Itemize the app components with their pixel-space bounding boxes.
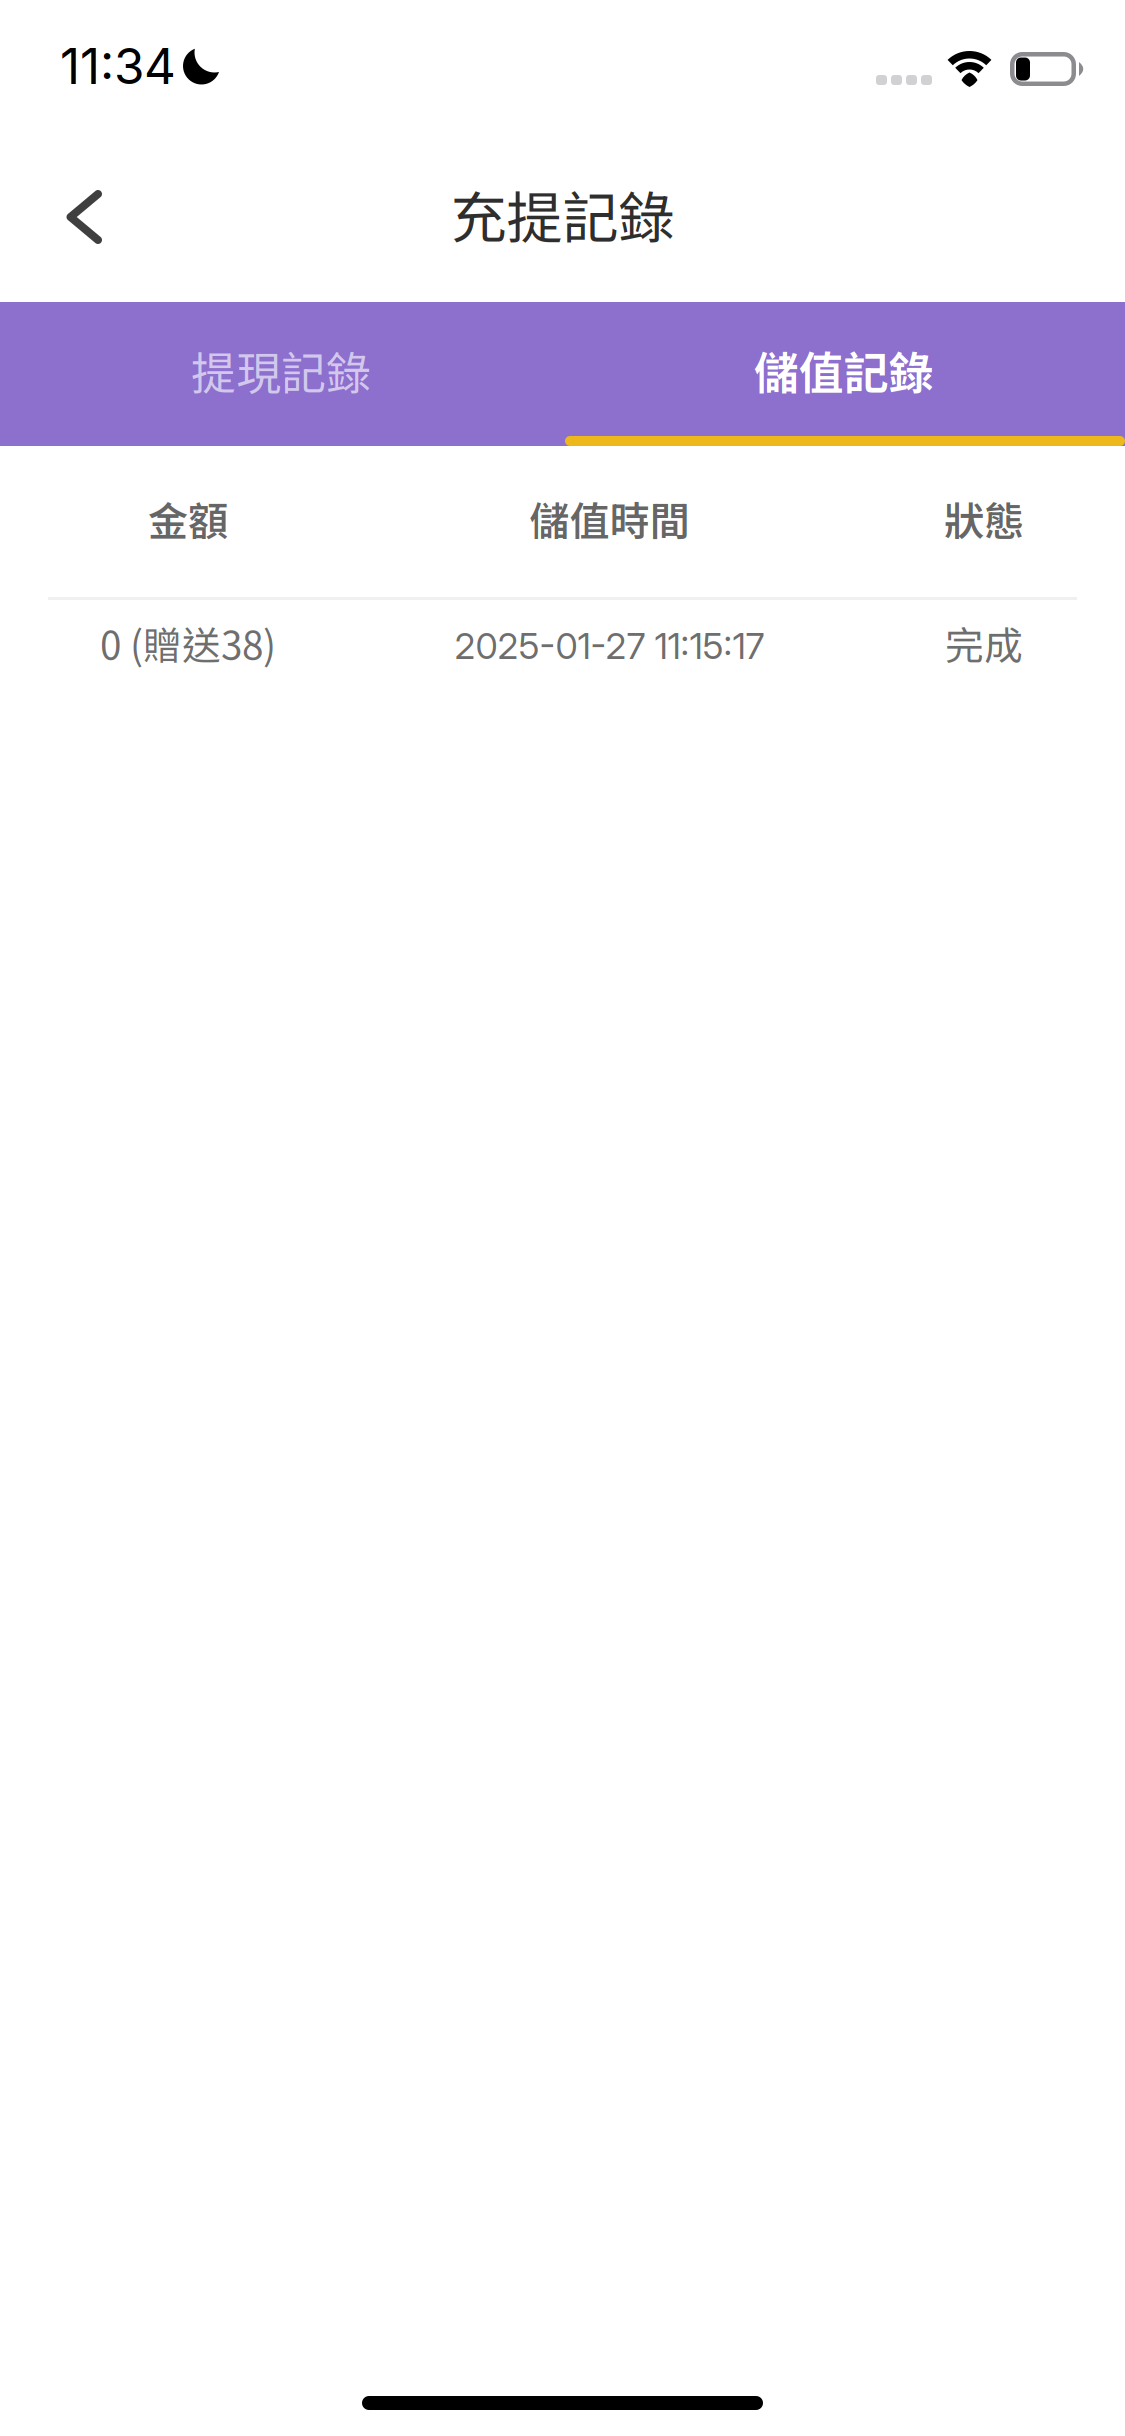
button[interactable]: Back <box>0 163 148 271</box>
staticText: 充提記錄 <box>450 173 674 255</box>
staticText: 提現記錄 <box>191 338 371 402</box>
button[interactable]: 提現記錄 <box>0 302 562 446</box>
staticText: 儲值時間 <box>529 489 689 547</box>
staticText: 狀態 <box>944 489 1024 547</box>
staticText: 11:34 <box>60 36 176 96</box>
staticText: 金額 <box>148 489 228 547</box>
staticText: 完成 <box>945 615 1023 671</box>
button[interactable]: 儲值記錄 <box>562 302 1125 446</box>
staticText: 0 (贈送38) <box>100 615 276 671</box>
button[interactable]: 0 (贈送38) <box>0 600 1125 720</box>
staticText: 儲值記錄 <box>754 338 934 402</box>
staticText: 2025-01-27 11:15:17 <box>454 624 764 668</box>
